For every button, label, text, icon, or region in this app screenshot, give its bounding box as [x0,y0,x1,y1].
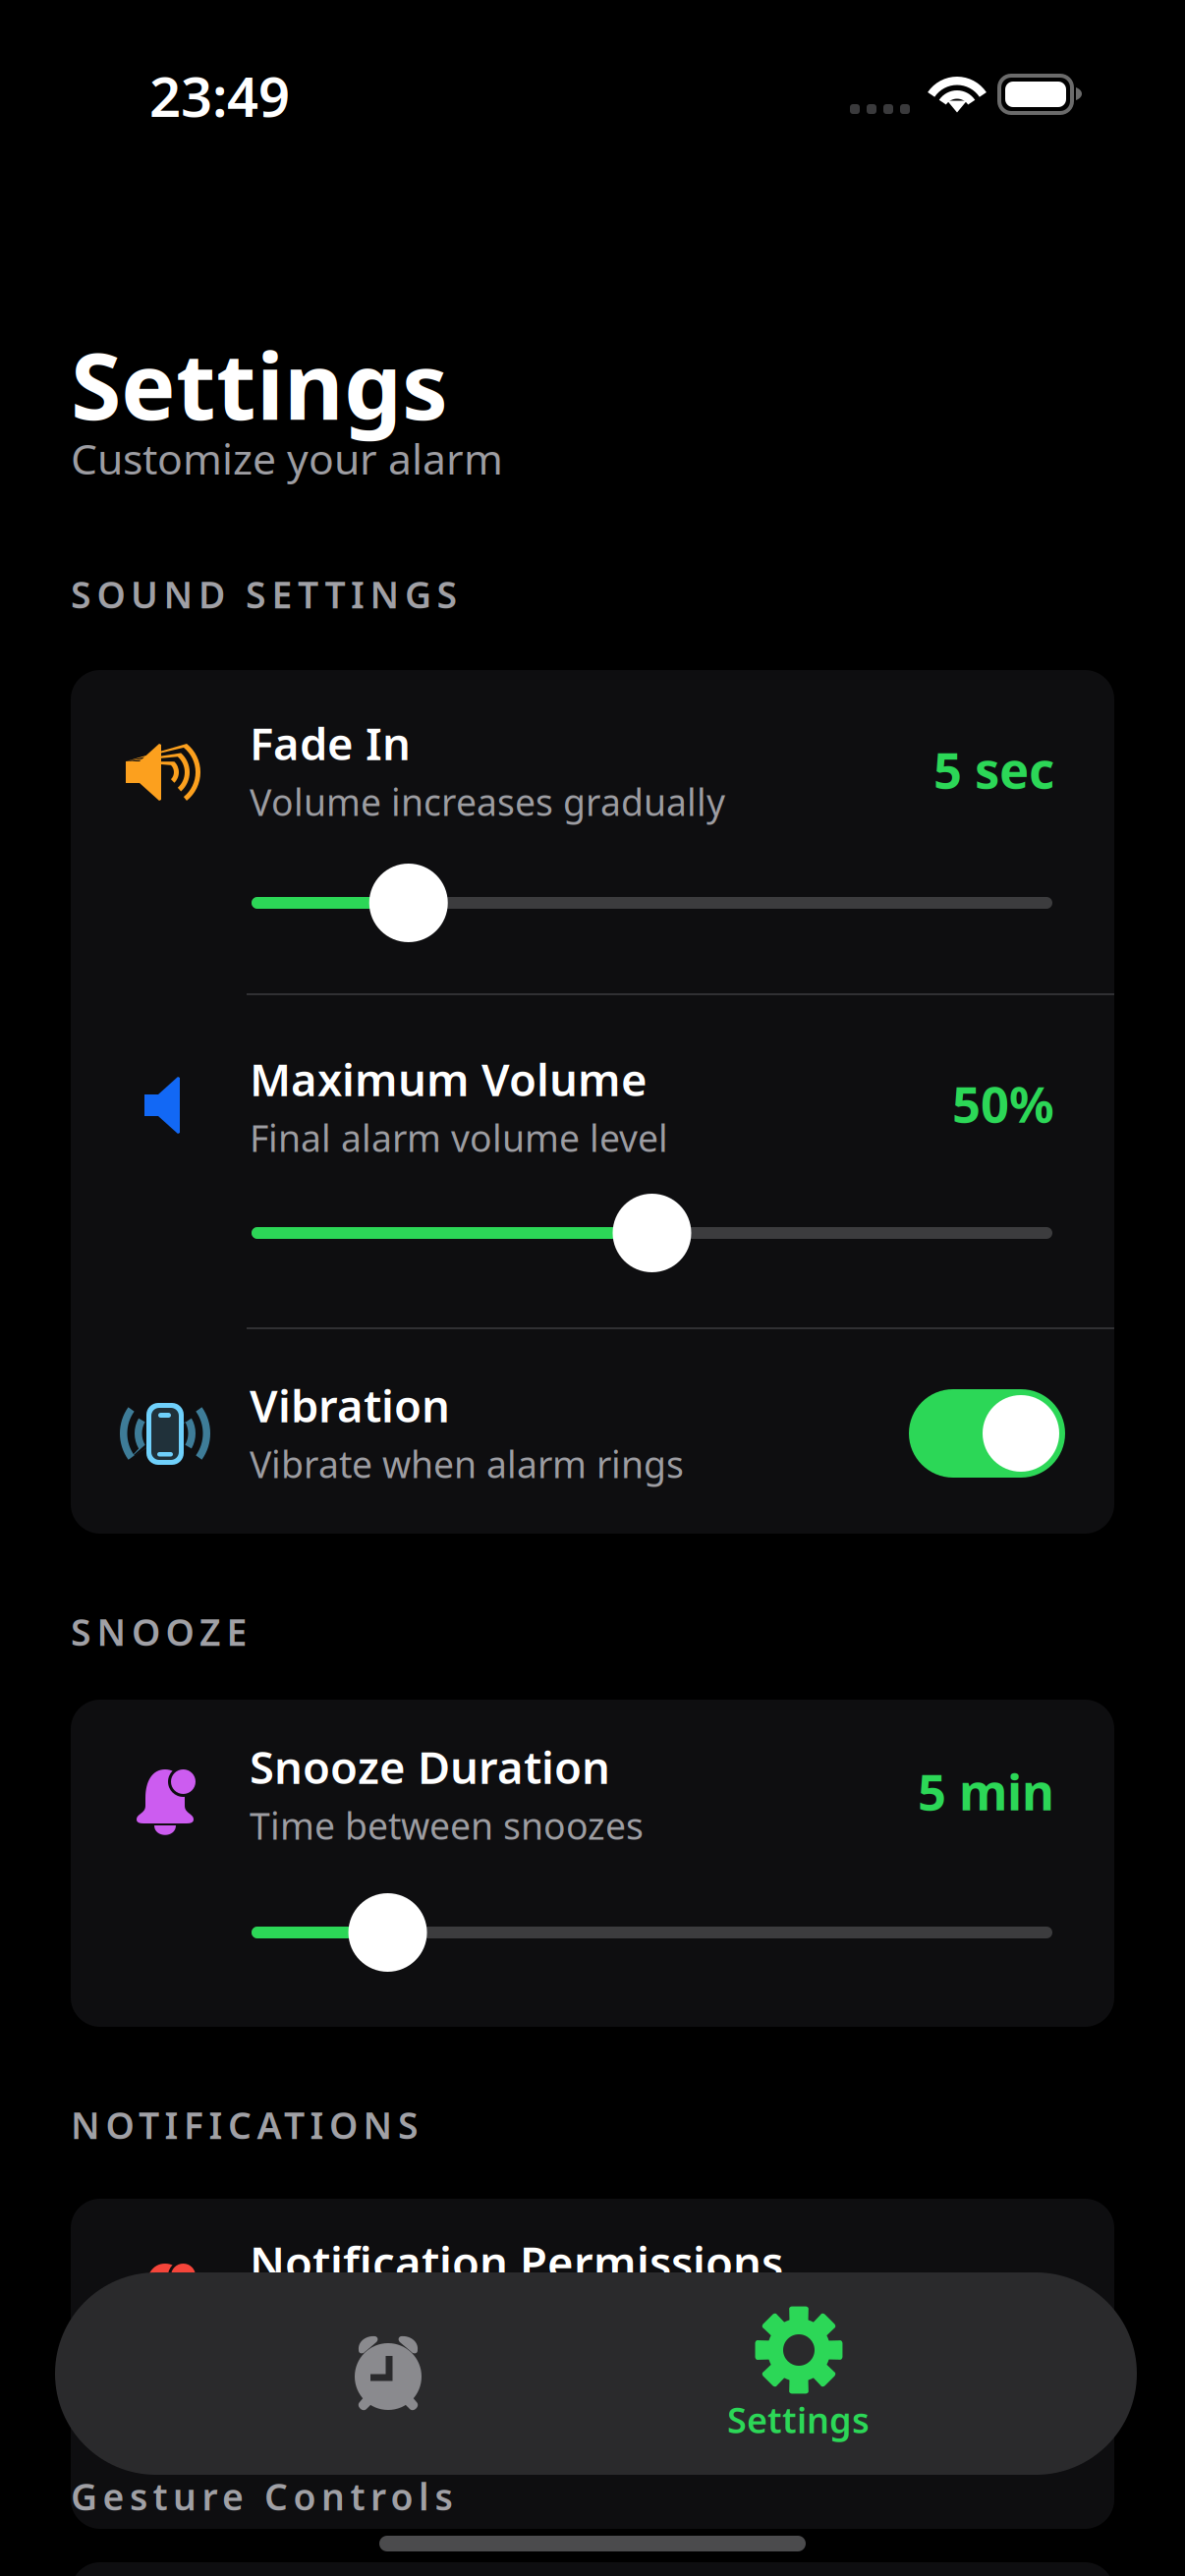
staticText: Gesture Controls [71,2472,452,2521]
staticText: Vibration [250,1375,450,1435]
staticText: 5 sec [933,736,1054,802]
button[interactable]: Settings [595,2272,1137,2475]
staticText: NOTIFICATIONS [71,2100,419,2149]
staticText: Fade In [250,713,411,772]
staticText: Final alarm volume level [250,1113,668,1162]
button[interactable]: Alarms [55,2272,595,2475]
staticText: SOUND SETTINGS [71,570,457,619]
staticText: 50% [952,1070,1054,1136]
staticText: Settings [727,2396,870,2443]
staticText: 23:49 [149,59,290,132]
staticText: 5 min [918,1758,1054,1824]
staticText: Vibrate when alarm rings [250,1439,684,1488]
staticText: Maximum Volume [250,1049,648,1108]
staticText: SNOOZE [71,1607,247,1656]
staticText: Time between snoozes [250,1801,644,1850]
staticText: Volume increases gradually [250,777,725,826]
staticText: Customize your alarm [71,430,503,486]
staticText: Snooze Duration [250,1737,610,1796]
staticText: Notification Permissions [250,2232,783,2291]
staticText: Settings [71,323,448,445]
